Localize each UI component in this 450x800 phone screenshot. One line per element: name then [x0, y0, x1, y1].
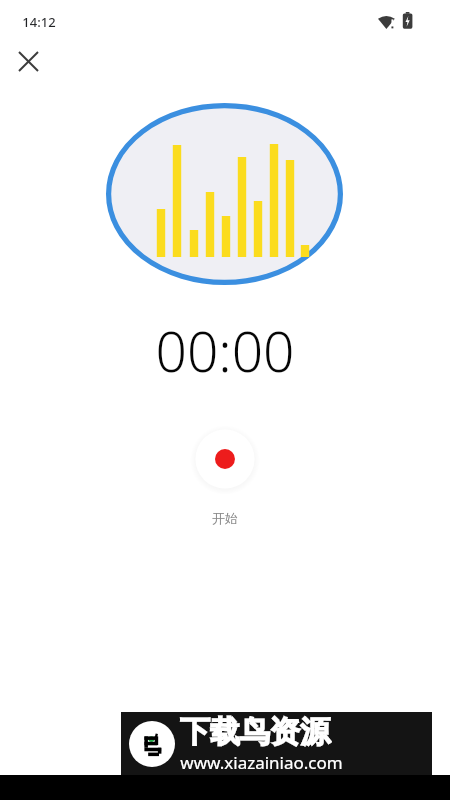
- button[interactable]: Close: [8, 41, 48, 81]
- staticText: 14:12: [22, 13, 56, 31]
- staticText: www.xiazainiao.com: [180, 751, 343, 774]
- staticText: 00:00: [155, 313, 295, 388]
- staticText: 开始: [212, 510, 238, 526]
- staticText: 下载鸟资源: [180, 713, 330, 751]
- button[interactable]: Start recording: [190, 424, 260, 494]
